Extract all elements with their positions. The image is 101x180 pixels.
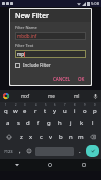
staticText: OK <box>78 76 85 82</box>
staticText: me <box>48 93 55 99</box>
staticText: mbdb.inf <box>17 33 37 39</box>
staticText: w <box>13 107 18 115</box>
staticText: f <box>37 119 40 127</box>
button[interactable]: 0 <box>91 103 99 115</box>
staticText: New Filter <box>15 11 49 21</box>
button[interactable]: s <box>14 117 22 129</box>
staticText: z <box>20 133 23 141</box>
button[interactable]: k <box>77 117 86 129</box>
button[interactable]: a <box>4 117 12 129</box>
staticText: c <box>40 133 43 141</box>
staticText: 1 <box>5 103 7 107</box>
staticText: u <box>63 107 67 115</box>
staticText: . <box>79 147 81 155</box>
staticText: ?123 <box>4 149 13 154</box>
staticText: i <box>74 107 76 115</box>
button[interactable]: h <box>55 117 64 129</box>
button[interactable]: , <box>16 145 23 157</box>
staticText: n <box>69 133 73 141</box>
staticText: k <box>80 119 84 127</box>
button[interactable]: CANCEL <box>51 75 73 83</box>
button[interactable]: Include Filter <box>15 62 86 68</box>
staticText: a <box>6 119 10 127</box>
staticText: 9 <box>84 103 86 107</box>
button[interactable]: d <box>24 117 32 129</box>
button[interactable]: z <box>17 131 25 143</box>
button[interactable]: 2 <box>11 103 19 115</box>
button[interactable]: m <box>77 131 85 143</box>
button[interactable]: v <box>47 131 55 143</box>
button[interactable]: me <box>38 90 64 102</box>
staticText: 7 <box>64 103 66 107</box>
staticText: l <box>92 119 94 127</box>
staticText: v <box>49 133 53 141</box>
button[interactable]: n <box>67 131 75 143</box>
staticText: Filter Text <box>15 43 34 48</box>
staticText: m <box>78 133 84 141</box>
button[interactable]: Voice input <box>90 90 101 102</box>
staticText: 5:08 <box>91 1 99 6</box>
button[interactable]: Google <box>0 90 12 102</box>
staticText: 2 <box>15 103 17 107</box>
button[interactable]: 8 <box>71 103 79 115</box>
staticText: e <box>23 107 27 115</box>
staticText: o <box>83 107 87 115</box>
button[interactable]: b <box>57 131 65 143</box>
button[interactable]: 6 <box>51 103 59 115</box>
staticText: j <box>70 119 72 127</box>
staticText: b <box>59 133 63 141</box>
button[interactable]: f <box>34 117 42 129</box>
button[interactable]: l <box>88 117 97 129</box>
button[interactable]: c <box>37 131 45 143</box>
button[interactable]: 5 <box>41 103 49 115</box>
staticText: 4 <box>35 103 37 107</box>
button[interactable]: 7 <box>61 103 69 115</box>
staticText: mp <box>17 51 24 57</box>
button[interactable]: 4 <box>31 103 39 115</box>
staticText: h <box>58 119 62 127</box>
staticText: ml <box>74 93 80 99</box>
staticText: Include Filter <box>23 62 51 68</box>
staticText: r <box>34 107 37 115</box>
staticText: 0 <box>94 103 96 107</box>
button[interactable]: Backspace <box>87 131 99 143</box>
button[interactable]: x <box>27 131 35 143</box>
button[interactable]: g <box>44 117 53 129</box>
button[interactable]: j <box>66 117 75 129</box>
staticText: 5 <box>45 103 47 107</box>
button[interactable]: ml <box>64 90 90 102</box>
button[interactable]: Emoji <box>25 145 33 157</box>
button[interactable]: ?123 <box>2 146 14 157</box>
staticText: 3 <box>24 103 26 107</box>
button[interactable]: Shift <box>2 131 15 143</box>
staticText: x <box>29 133 33 141</box>
staticText: mxf <box>21 93 30 99</box>
button[interactable]: OK <box>76 75 87 83</box>
staticText: d <box>26 119 30 127</box>
button[interactable]: 1 <box>2 103 9 115</box>
staticText: g <box>47 119 51 127</box>
staticText: y <box>53 107 57 115</box>
button[interactable]: Home <box>33 159 67 171</box>
button[interactable]: 3 <box>21 103 29 115</box>
staticText: CANCEL <box>53 76 71 82</box>
staticText: , <box>19 147 21 155</box>
staticText: 6 <box>54 103 56 107</box>
staticText: Filter Name <box>15 25 37 30</box>
button[interactable]: 9 <box>81 103 89 115</box>
staticText: s <box>17 119 20 127</box>
button[interactable]: Recents <box>67 159 101 171</box>
staticText: 8 <box>74 103 76 107</box>
staticText: q <box>4 107 8 115</box>
button[interactable]: Enter <box>86 145 99 157</box>
staticText: t <box>44 107 47 115</box>
button[interactable]: Back <box>0 159 33 171</box>
button[interactable]: mxf <box>12 90 38 102</box>
button[interactable]: . <box>76 145 84 157</box>
staticText: p <box>93 107 97 115</box>
